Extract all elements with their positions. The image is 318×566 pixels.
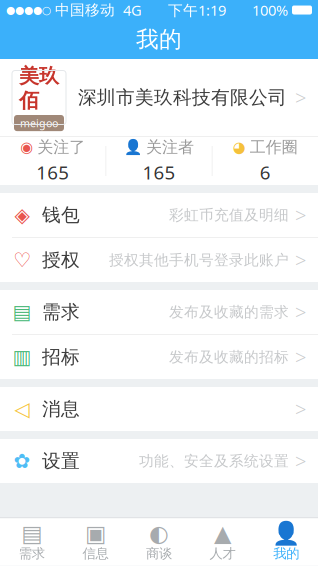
staticText: 6: [260, 160, 271, 185]
button[interactable]: ◉: [0, 129, 105, 193]
staticText: 中国移动: [51, 1, 115, 19]
staticText: ◉: [20, 139, 33, 155]
staticText: 消息: [42, 397, 80, 420]
button[interactable]: ♡: [0, 238, 318, 282]
staticText: ▤: [12, 301, 31, 323]
staticText: 4G: [115, 0, 142, 20]
staticText: >: [295, 84, 306, 111]
staticText: 发布及收藏的需求: [169, 303, 289, 321]
staticText: 深圳市美玖科技有限公司: [78, 86, 287, 109]
staticText: ▥: [12, 346, 31, 368]
staticText: ◈: [14, 204, 29, 226]
staticText: 美玖佰: [19, 64, 59, 113]
staticText: 👤: [124, 139, 142, 155]
staticText: ◁: [14, 398, 29, 420]
staticText: 彩虹币充值及明细: [169, 206, 289, 224]
button[interactable]: ▤: [0, 290, 318, 335]
staticText: >: [295, 299, 306, 325]
button[interactable]: ▤: [0, 518, 64, 566]
staticText: 发布及收藏的招标: [169, 348, 289, 366]
staticText: >: [295, 448, 306, 474]
staticText: 钱包: [42, 203, 80, 226]
button[interactable]: ◐: [127, 518, 191, 566]
staticText: 招标: [42, 345, 80, 368]
staticText: meigoo: [20, 116, 58, 130]
button[interactable]: ◕: [213, 129, 318, 193]
staticText: 商谈: [146, 545, 172, 562]
staticText: 下午1:19: [168, 0, 226, 20]
staticText: 授权: [42, 248, 80, 271]
button[interactable]: 👤: [254, 518, 318, 566]
staticText: 关注者: [146, 137, 194, 157]
staticText: ▤: [21, 520, 42, 546]
button[interactable]: ◈: [0, 193, 318, 238]
staticText: 信息: [82, 545, 108, 562]
staticText: ●●●●○: [6, 4, 51, 16]
button[interactable]: ✿: [0, 439, 318, 483]
button[interactable]: ▲: [191, 518, 254, 566]
staticText: >: [295, 202, 306, 228]
staticText: 165: [142, 160, 175, 185]
staticText: ◕: [233, 139, 246, 155]
staticText: 授权其他手机号登录此账户: [109, 251, 289, 269]
button[interactable]: 👤: [106, 129, 212, 193]
staticText: 设置: [42, 449, 80, 472]
staticText: 需求: [42, 300, 80, 323]
button[interactable]: ◁: [0, 387, 318, 431]
staticText: 100%: [252, 0, 288, 20]
staticText: 165: [36, 160, 69, 185]
staticText: ▲: [214, 520, 231, 546]
staticText: >: [295, 344, 306, 370]
staticText: 需求: [19, 545, 45, 562]
staticText: ✿: [13, 450, 30, 472]
staticText: >: [295, 247, 306, 273]
staticText: 工作圈: [250, 137, 298, 157]
staticText: ▣: [85, 520, 106, 546]
staticText: ♡: [13, 249, 31, 271]
staticText: >: [295, 396, 306, 422]
staticText: 我的: [136, 26, 182, 53]
staticText: 关注了: [37, 137, 85, 157]
staticText: 我的: [273, 545, 299, 562]
staticText: 功能、安全及系统设置: [139, 452, 289, 470]
button[interactable]: ▥: [0, 335, 318, 379]
staticText: 👤: [272, 520, 300, 546]
staticText: 人才: [210, 545, 236, 562]
button[interactable]: 美玖佰: [0, 59, 318, 136]
button[interactable]: ▣: [64, 518, 127, 566]
staticText: ◐: [149, 520, 169, 546]
